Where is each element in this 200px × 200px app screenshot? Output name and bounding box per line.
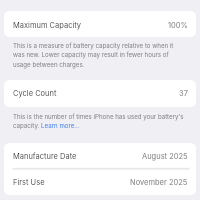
staticText: This is the number of times iPhone has u… xyxy=(13,113,184,120)
staticText: This is a measure of battery capacity re… xyxy=(13,42,174,49)
staticText: was new. Lower capacity may result in fe… xyxy=(13,51,169,58)
button[interactable]: Manufacture Date xyxy=(4,143,196,169)
button[interactable]: First Use xyxy=(4,169,196,195)
staticText: First Use xyxy=(13,178,45,187)
staticText: capacity. Learn more... xyxy=(13,122,80,129)
staticText: Cycle Count xyxy=(13,89,57,98)
staticText: 37 xyxy=(179,89,188,98)
button[interactable]: Cycle Count xyxy=(4,80,196,107)
staticText: usage between charges. xyxy=(13,61,85,68)
staticText: November 2025 xyxy=(130,178,188,187)
staticText: 100% xyxy=(168,21,188,30)
staticText: Manufacture Date xyxy=(13,152,77,161)
button[interactable]: Maximum Capacity xyxy=(4,11,196,37)
staticText: Maximum Capacity xyxy=(13,21,82,30)
staticText: August 2025 xyxy=(142,152,188,161)
